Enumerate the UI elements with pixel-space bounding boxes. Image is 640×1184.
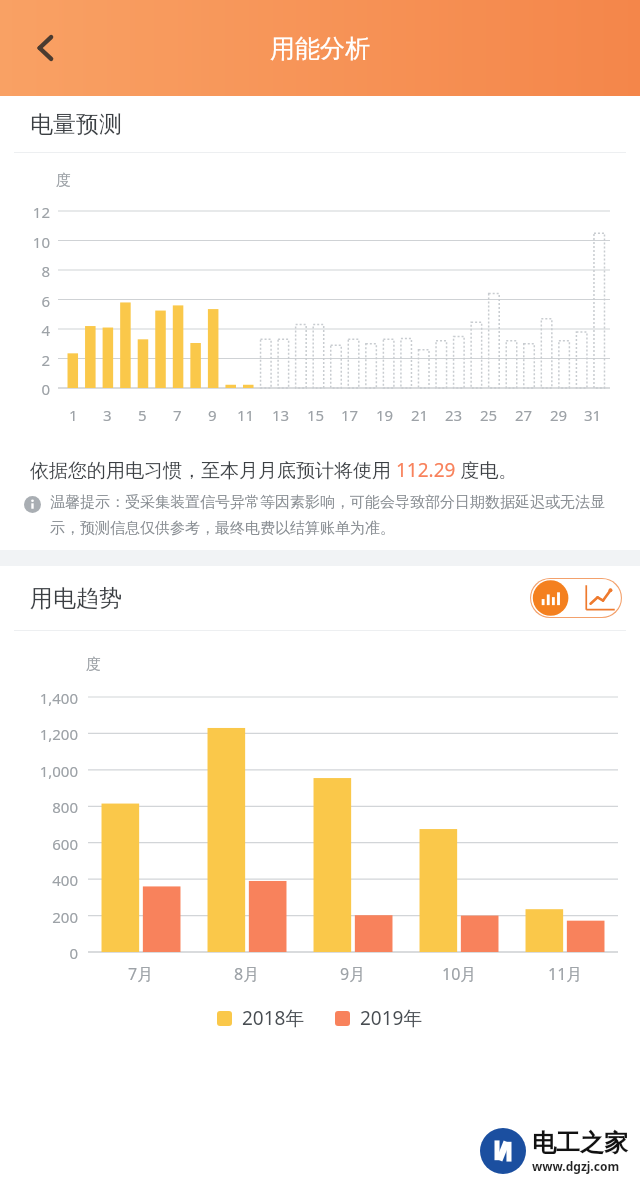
staticText: 0	[41, 379, 50, 399]
button[interactable]: 2018年	[217, 1005, 305, 1031]
staticText: 25	[480, 405, 498, 425]
staticText: 2019年	[360, 1005, 423, 1031]
staticText: 15	[307, 405, 325, 425]
staticText: 31	[584, 405, 602, 425]
staticText: 27	[515, 405, 533, 425]
staticText: 7月	[128, 963, 154, 985]
staticText: 0	[69, 943, 78, 963]
staticText: 19	[376, 405, 394, 425]
staticText: 9	[208, 405, 217, 425]
staticText: 29	[550, 405, 568, 425]
staticText: 17	[341, 405, 359, 425]
staticText: 用电趋势	[30, 584, 122, 613]
button[interactable]: Back	[16, 18, 76, 78]
staticText: 度	[56, 171, 71, 190]
staticText: 600	[52, 834, 78, 854]
staticText: 2018年	[242, 1005, 305, 1031]
staticText: 电量预测	[30, 110, 122, 139]
staticText: 2	[41, 350, 50, 370]
staticText: 21	[411, 405, 429, 425]
staticText: 4	[41, 320, 50, 340]
staticText: 12	[32, 202, 50, 222]
staticText: 1,200	[39, 724, 78, 744]
staticText: 用能分析	[270, 33, 370, 64]
staticText: 8	[41, 261, 50, 281]
staticText: 8月	[234, 963, 260, 985]
staticText: 依据您的用电习惯，至本月月底预计将使用 112.29 度电。	[30, 457, 518, 483]
staticText: 度	[86, 655, 101, 674]
staticText: 3	[103, 405, 112, 425]
staticText: 11	[237, 405, 255, 425]
staticText: 电工之家	[532, 1128, 628, 1158]
staticText: 10月	[442, 963, 477, 985]
staticText: www.dgzj.com	[532, 1158, 620, 1174]
staticText: 800	[52, 797, 78, 817]
staticText: 6	[41, 291, 50, 311]
staticText: 7	[173, 405, 182, 425]
staticText: 1,000	[39, 761, 78, 781]
staticText: 400	[52, 870, 78, 890]
staticText: 1	[69, 405, 78, 425]
staticText: 11月	[548, 963, 583, 985]
staticText: 13	[272, 405, 290, 425]
staticText: 10	[32, 232, 50, 252]
button[interactable]: Switch chart type	[530, 578, 622, 618]
staticText: 200	[52, 907, 78, 927]
staticText: 温馨提示：受采集装置信号异常等因素影响，可能会导致部分日期数据延迟或无法显示，预…	[50, 493, 616, 538]
staticText: 1,400	[39, 688, 78, 708]
button[interactable]: 2019年	[335, 1005, 423, 1031]
staticText: 23	[445, 405, 463, 425]
staticText: 9月	[340, 963, 366, 985]
staticText: 5	[138, 405, 147, 425]
